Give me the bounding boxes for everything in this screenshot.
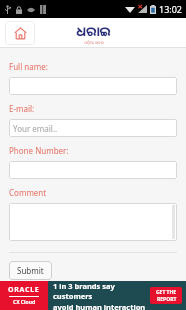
staticText: Full name: (9, 61, 48, 72)
staticText: CX Cloud (13, 299, 36, 306)
staticText: ଧରାଇ (76, 22, 111, 40)
staticText: ଓଡ଼ିଆ ଖବର (84, 40, 104, 45)
staticText: Phone Number: (9, 145, 69, 156)
staticText: 13:02 (159, 3, 183, 15)
staticText: 1 in 3 brands say customers (53, 281, 150, 301)
button[interactable]: Home (5, 21, 35, 45)
staticText: Your email.. (13, 123, 58, 134)
staticText: REPORT (157, 296, 177, 303)
button[interactable]: GET THE (150, 287, 182, 304)
button[interactable]: Submit (9, 261, 52, 280)
staticText: ORACLE (8, 285, 40, 295)
staticText: Submit (17, 265, 44, 276)
staticText: GET THE (156, 289, 177, 296)
staticText: E-mail: (9, 103, 35, 114)
staticText: avoid human interaction (53, 302, 146, 310)
button[interactable] (9, 161, 177, 179)
button[interactable]: ORACLE (0, 281, 186, 310)
button[interactable] (9, 203, 177, 241)
button[interactable] (9, 77, 177, 95)
button[interactable]: Your email.. (9, 119, 177, 137)
staticText: Comment (9, 187, 47, 198)
